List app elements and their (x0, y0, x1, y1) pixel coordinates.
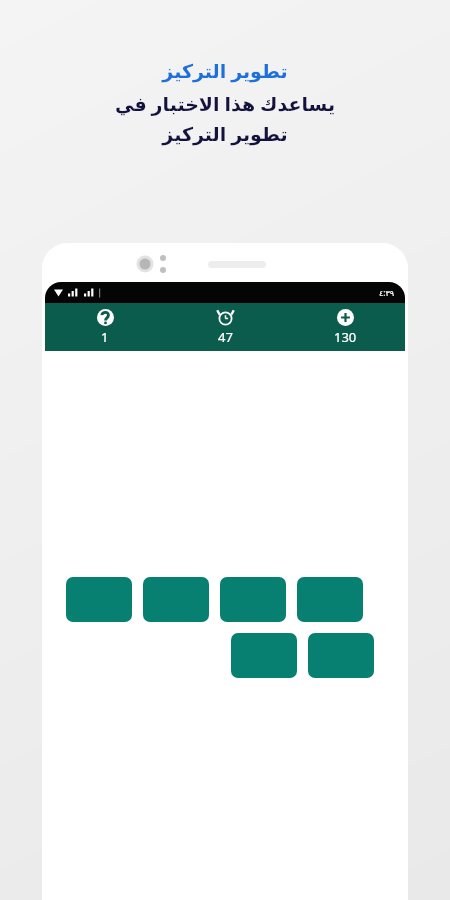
button[interactable]: Tile (297, 577, 363, 622)
button[interactable]: Score (285, 305, 405, 350)
button[interactable]: Tile (66, 577, 132, 622)
button[interactable]: Tile (231, 633, 297, 678)
staticText: 130 (334, 328, 357, 346)
button[interactable]: Tile (220, 577, 286, 622)
staticText: يساعدك هذا الاختبار في (28, 91, 422, 117)
staticText: 1 (101, 328, 109, 346)
staticText: تطوير التركيز (28, 58, 422, 84)
button[interactable]: Level (45, 305, 165, 350)
staticText: ٤:٣٩ (379, 287, 395, 298)
button[interactable]: Timer (165, 305, 285, 350)
button[interactable]: Tile (308, 633, 374, 678)
staticText: 47 (218, 328, 233, 346)
button[interactable]: Tile (143, 577, 209, 622)
staticText: تطوير التركيز (28, 121, 422, 147)
